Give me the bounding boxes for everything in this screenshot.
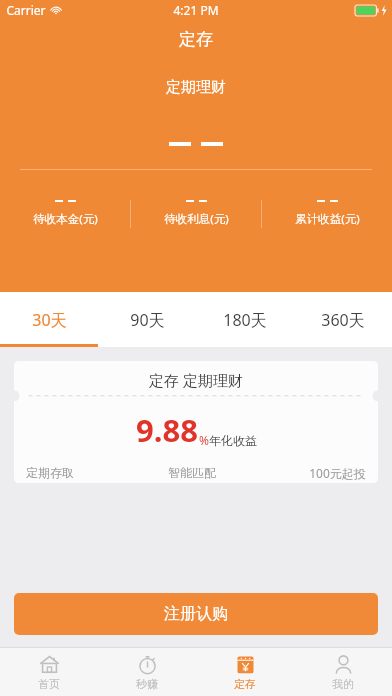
button[interactable]: 30天	[0, 292, 98, 347]
staticText: 30天	[32, 309, 67, 331]
staticText: 180天	[223, 309, 267, 331]
staticText: %	[199, 432, 209, 448]
staticText: 累计收益(元)	[295, 211, 360, 227]
staticText: 待收本金(元)	[33, 211, 98, 227]
staticText: 秒赚	[136, 677, 158, 691]
staticText: 定存 定期理财	[149, 370, 243, 390]
staticText: 定期存取	[26, 465, 74, 480]
button[interactable]: 180天	[196, 292, 294, 347]
staticText: 定存	[179, 29, 213, 50]
staticText: 智能匹配	[168, 465, 216, 480]
button[interactable]: 90天	[98, 292, 196, 347]
button[interactable]: 注册认购	[14, 593, 378, 635]
button[interactable]: 我的	[294, 648, 392, 696]
staticText: 9.88	[136, 409, 198, 451]
button[interactable]: 首页	[0, 648, 98, 696]
staticText: 90天	[130, 309, 165, 331]
staticText: 我的	[332, 677, 354, 691]
staticText: 待收利息(元)	[164, 211, 229, 227]
staticText: 4:21 PM	[173, 2, 219, 18]
button[interactable]: 360天	[294, 292, 392, 347]
button[interactable]: 定存 定期理财	[14, 361, 378, 483]
button[interactable]: 定存	[196, 648, 294, 696]
staticText: 定存	[234, 677, 256, 691]
staticText: 100元起投	[309, 465, 366, 481]
staticText: Carrier	[6, 2, 46, 18]
button[interactable]: 秒赚	[98, 648, 196, 696]
staticText: 注册认购	[164, 604, 228, 624]
staticText: 定期理财	[166, 78, 226, 97]
staticText: 首页	[38, 677, 60, 691]
staticText: 360天	[321, 309, 365, 331]
staticText: 年化收益	[209, 433, 257, 448]
